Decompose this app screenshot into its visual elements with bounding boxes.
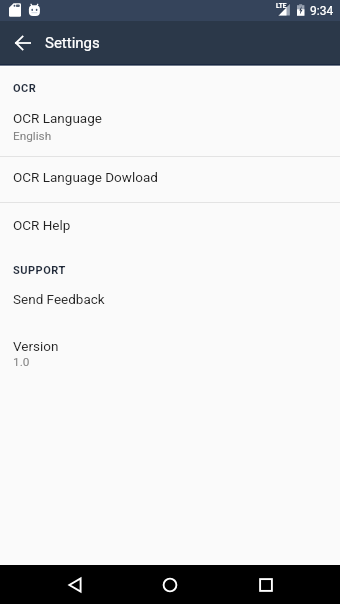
button[interactable]: Version — [0, 334, 340, 379]
button[interactable]: OCR Language Dowload — [0, 165, 340, 202]
staticText: LTE — [276, 2, 287, 10]
staticText: Send Feedback — [13, 291, 105, 307]
staticText: 9:34 — [310, 4, 334, 18]
button[interactable]: Home — [141, 565, 198, 604]
staticText: English — [13, 129, 52, 143]
button[interactable]: OCR Language — [0, 106, 340, 152]
staticText: Settings — [45, 34, 100, 52]
staticText: OCR Language Dowload — [13, 169, 158, 185]
button[interactable]: Back — [46, 565, 103, 604]
button[interactable]: Back — [0, 21, 45, 64]
button[interactable]: Recent apps — [237, 565, 294, 604]
staticText: Version — [13, 338, 59, 354]
staticText: SUPPORT — [13, 264, 66, 277]
staticText: OCR Language — [13, 110, 102, 126]
button[interactable]: OCR Help — [0, 213, 340, 252]
staticText: OCR — [13, 82, 37, 95]
staticText: 1.0 — [13, 355, 30, 369]
staticText: OCR Help — [13, 217, 71, 233]
button[interactable]: Send Feedback — [0, 287, 340, 326]
